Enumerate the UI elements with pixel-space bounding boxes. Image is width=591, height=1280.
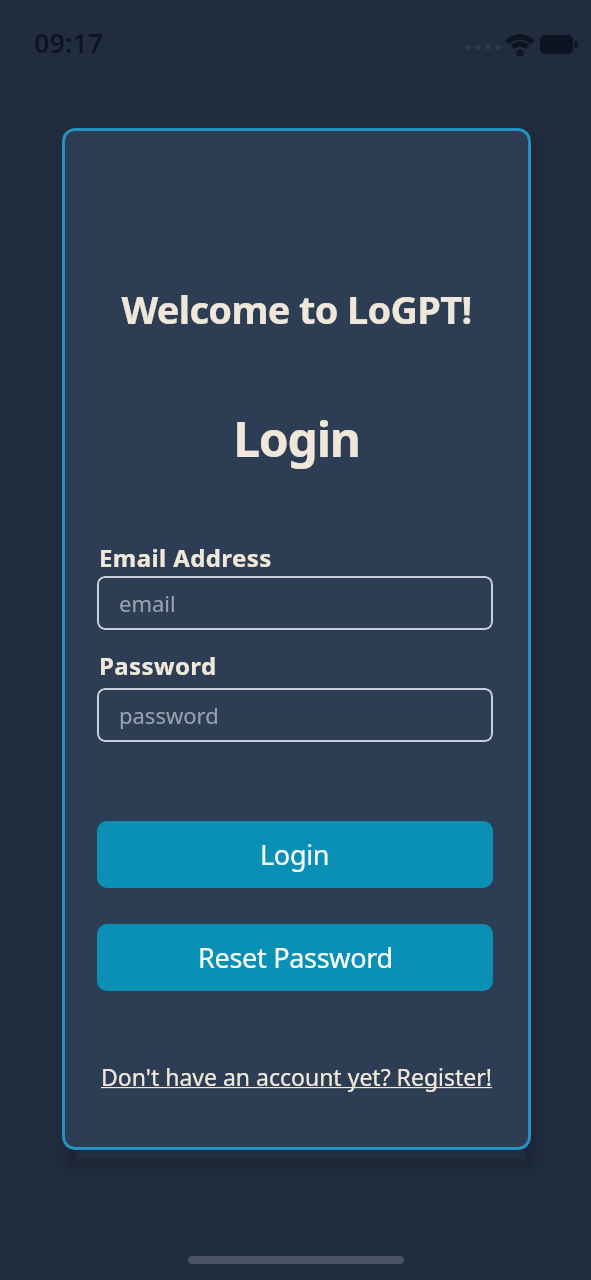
staticText: Welcome to LoGPT! — [62, 283, 531, 335]
staticText: password — [119, 700, 219, 730]
button[interactable]: email — [97, 576, 493, 630]
button[interactable]: password — [97, 688, 493, 742]
button[interactable]: Don't have an account yet? Register! — [62, 1061, 531, 1092]
staticText: email — [119, 588, 176, 618]
staticText: Reset Password — [198, 939, 393, 976]
button[interactable]: Login — [97, 821, 493, 888]
staticText: Password — [99, 649, 217, 682]
staticText: Login — [62, 406, 531, 471]
staticText: 09:17 — [34, 24, 104, 61]
button[interactable]: Reset Password — [97, 924, 493, 991]
staticText: Login — [260, 836, 330, 873]
staticText: Email Address — [99, 541, 272, 574]
